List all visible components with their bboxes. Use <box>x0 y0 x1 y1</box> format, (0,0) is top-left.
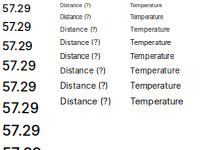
staticText: 57.29 <box>2 78 36 95</box>
staticText: Distance (?) <box>60 26 97 33</box>
staticText: Distance (?) <box>60 2 91 8</box>
staticText: Distance (?) <box>60 80 108 91</box>
staticText: 57.29 <box>2 20 31 34</box>
staticText: 57.29 <box>2 2 31 15</box>
staticText: Distance (?) <box>60 96 111 107</box>
staticText: 57.29 <box>2 58 36 73</box>
staticText: Temperature <box>130 13 163 21</box>
staticText: Temperature <box>130 96 183 107</box>
staticText: 57.29 <box>2 144 42 150</box>
staticText: Temperature <box>130 52 174 61</box>
staticText: 57.29 <box>2 39 33 53</box>
staticText: Distance (?) <box>60 66 106 75</box>
staticText: 57.29 <box>2 100 39 116</box>
staticText: Temperature <box>130 2 162 8</box>
staticText: Distance (?) <box>60 52 101 61</box>
staticText: Temperature <box>130 26 170 33</box>
staticText: Temperature <box>130 66 180 75</box>
staticText: Temperature <box>130 80 181 91</box>
staticText: Distance (?) <box>60 13 91 21</box>
staticText: Distance (?) <box>60 38 101 47</box>
staticText: 57.29 <box>2 121 40 139</box>
staticText: Temperature <box>130 38 171 47</box>
